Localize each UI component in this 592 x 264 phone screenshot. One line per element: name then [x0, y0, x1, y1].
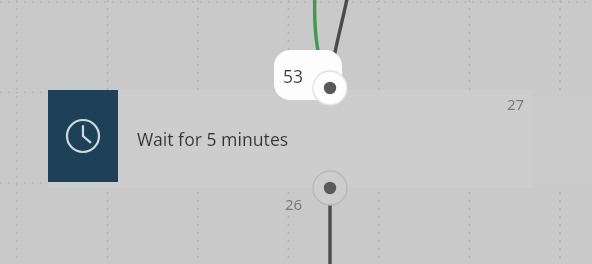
staticText: 26	[285, 194, 303, 214]
staticText: 27	[507, 94, 525, 114]
button[interactable]: Wait action	[48, 90, 118, 182]
button[interactable]	[48, 90, 533, 188]
staticText: 53	[283, 64, 304, 88]
button[interactable]	[274, 50, 342, 100]
staticText: Wait for 5 minutes	[137, 127, 289, 151]
